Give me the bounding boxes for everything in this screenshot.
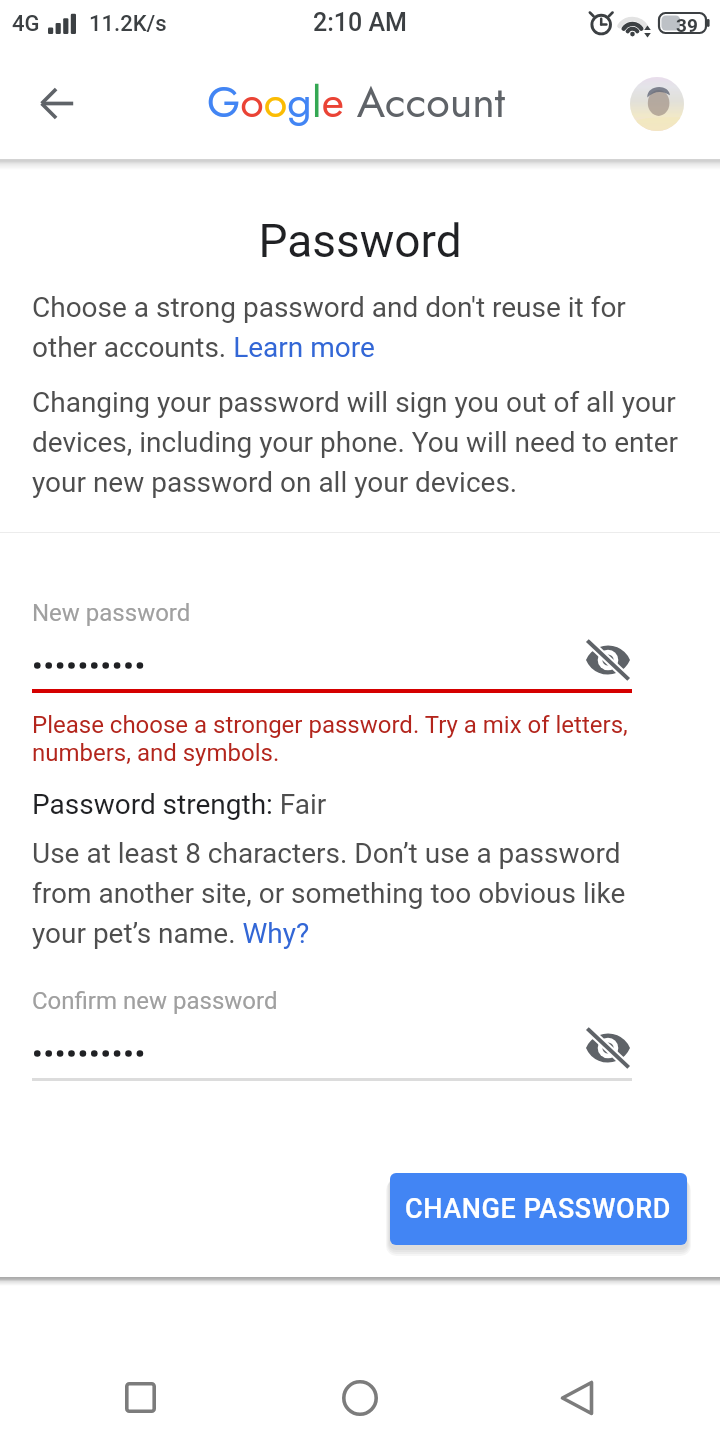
button[interactable]: Navigate up — [25, 72, 87, 134]
staticText: Changing your password will sign you out… — [32, 386, 687, 499]
button[interactable]: Google Account profile — [630, 77, 684, 131]
staticText: Please choose a stronger password. Try a… — [32, 711, 634, 767]
staticText: Password strength: Fair — [32, 788, 327, 821]
staticText: Choose a strong password and don't reuse… — [32, 291, 687, 364]
staticText: Confirm new password — [32, 987, 278, 1015]
staticText: Use at least 8 characters. Don’t use a p… — [32, 837, 648, 950]
staticText: 11.2K/s — [89, 11, 167, 37]
button[interactable]: Show new password — [585, 637, 631, 683]
button[interactable]: Recent apps — [110, 1367, 170, 1427]
button[interactable]: Home — [330, 1368, 390, 1428]
staticText: CHANGE PASSWORD — [405, 1193, 672, 1225]
staticText: 39 — [676, 14, 698, 36]
staticText: 2:10 AM — [313, 8, 408, 37]
staticText: Google Account — [207, 71, 506, 133]
button[interactable]: Back — [547, 1368, 607, 1428]
staticText: Password — [0, 214, 720, 268]
staticText: 4G — [12, 11, 40, 37]
button[interactable]: Show confirm password — [585, 1025, 631, 1071]
staticText: New password — [32, 599, 191, 627]
button[interactable]: CHANGE PASSWORD — [390, 1173, 687, 1245]
